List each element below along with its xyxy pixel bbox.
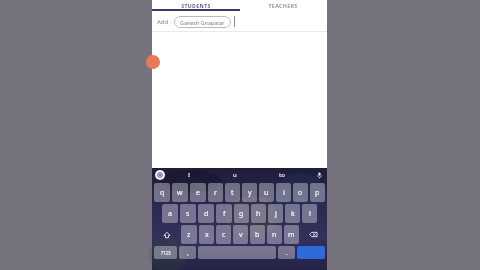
button[interactable]: g bbox=[234, 204, 249, 223]
button[interactable]: t bbox=[225, 183, 240, 202]
staticText: u bbox=[233, 171, 237, 179]
staticText: I bbox=[188, 171, 191, 179]
button[interactable]: , bbox=[179, 246, 196, 259]
staticText: h bbox=[256, 209, 261, 219]
staticText: m bbox=[288, 230, 295, 240]
staticText: j bbox=[275, 209, 277, 219]
button[interactable]: v bbox=[233, 225, 248, 244]
button[interactable]: m bbox=[284, 225, 299, 244]
staticText: k bbox=[291, 209, 295, 219]
staticText: Add bbox=[157, 18, 169, 26]
button[interactable]: j bbox=[268, 204, 283, 223]
staticText: b bbox=[255, 230, 260, 240]
staticText: q bbox=[160, 188, 165, 198]
staticText: y bbox=[248, 188, 252, 198]
staticText: d bbox=[204, 209, 209, 219]
staticText: g bbox=[239, 209, 244, 219]
button[interactable]: Enter bbox=[297, 246, 325, 259]
button[interactable]: Ganesh Gnapatar bbox=[174, 16, 231, 28]
button[interactable]: r bbox=[208, 183, 223, 202]
staticText: c bbox=[222, 230, 226, 240]
button[interactable]: Voice input bbox=[314, 170, 324, 180]
button[interactable]: c bbox=[216, 225, 231, 244]
button[interactable]: h bbox=[251, 204, 266, 223]
staticText: s bbox=[186, 209, 190, 219]
button[interactable]: f bbox=[216, 204, 232, 223]
staticText: Ganesh Gnapatar bbox=[180, 19, 225, 26]
button[interactable]: STUDENTS bbox=[152, 0, 239, 11]
staticText: i bbox=[283, 188, 285, 198]
button[interactable]: a bbox=[162, 204, 178, 223]
staticText: to bbox=[279, 171, 285, 179]
staticText: v bbox=[239, 230, 243, 240]
button[interactable]: n bbox=[267, 225, 282, 244]
staticText: p bbox=[315, 188, 320, 198]
button[interactable]: y bbox=[242, 183, 257, 202]
button[interactable]: x bbox=[199, 225, 214, 244]
button[interactable]: Symbols bbox=[154, 246, 177, 259]
staticText: f bbox=[223, 209, 226, 219]
button[interactable]: i bbox=[276, 183, 291, 202]
button[interactable]: k bbox=[285, 204, 300, 223]
staticText: u bbox=[264, 188, 269, 198]
button[interactable]: Backspace bbox=[301, 225, 325, 244]
staticText: ?123 bbox=[161, 250, 171, 256]
button[interactable]: l bbox=[302, 204, 317, 223]
button[interactable]: z bbox=[181, 225, 197, 244]
button[interactable]: . bbox=[278, 246, 295, 259]
button[interactable]: Space bbox=[198, 246, 276, 259]
button[interactable]: w bbox=[172, 183, 188, 202]
button[interactable]: TEACHERS bbox=[239, 0, 327, 11]
button[interactable]: Keyboard options bbox=[155, 170, 165, 180]
staticText: a bbox=[168, 209, 172, 219]
staticText: r bbox=[214, 188, 217, 198]
staticText: o bbox=[298, 188, 303, 198]
button[interactable]: q bbox=[154, 183, 170, 202]
staticText: x bbox=[205, 230, 209, 240]
staticText: w bbox=[177, 188, 183, 198]
button[interactable]: Shift bbox=[154, 225, 179, 244]
button[interactable]: o bbox=[293, 183, 308, 202]
button[interactable]: e bbox=[190, 183, 206, 202]
staticText: , bbox=[187, 248, 189, 258]
staticText: . bbox=[286, 248, 288, 258]
button[interactable]: b bbox=[250, 225, 265, 244]
button[interactable]: s bbox=[180, 204, 196, 223]
staticText: t bbox=[231, 188, 234, 198]
staticText: z bbox=[187, 230, 191, 240]
staticText: STUDENTS bbox=[181, 2, 211, 9]
staticText: n bbox=[272, 230, 277, 240]
button[interactable]: p bbox=[310, 183, 325, 202]
staticText: TEACHERS bbox=[268, 2, 298, 9]
staticText: e bbox=[196, 188, 200, 198]
staticText: l bbox=[309, 209, 311, 219]
button[interactable]: d bbox=[198, 204, 214, 223]
button[interactable]: u bbox=[259, 183, 274, 202]
